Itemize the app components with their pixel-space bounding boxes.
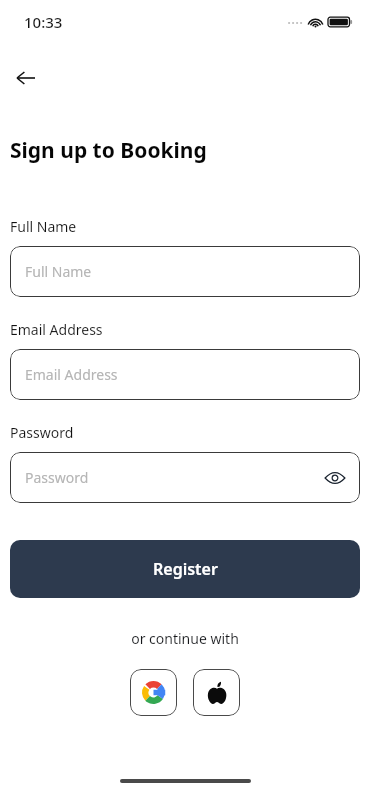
staticText: Password	[10, 423, 74, 442]
staticText: Sign up to Booking	[10, 136, 207, 165]
button[interactable]: Back	[6, 58, 46, 98]
button[interactable]: Full Name	[10, 246, 360, 297]
staticText: 10:33	[24, 12, 63, 32]
staticText: Full Name	[10, 217, 77, 236]
button[interactable]: Continue with Google	[130, 669, 177, 716]
staticText: Full Name	[25, 262, 92, 281]
staticText: Email Address	[10, 320, 103, 339]
staticText: or continue with	[10, 629, 360, 648]
staticText: Register	[153, 558, 218, 580]
button[interactable]: Show password	[322, 465, 348, 491]
button[interactable]: Continue with Apple	[193, 669, 240, 716]
button[interactable]: Register	[10, 540, 360, 598]
staticText: Password	[25, 468, 89, 487]
button[interactable]: Email Address	[10, 349, 360, 400]
button[interactable]: Password	[10, 452, 360, 503]
staticText: Email Address	[25, 365, 118, 384]
